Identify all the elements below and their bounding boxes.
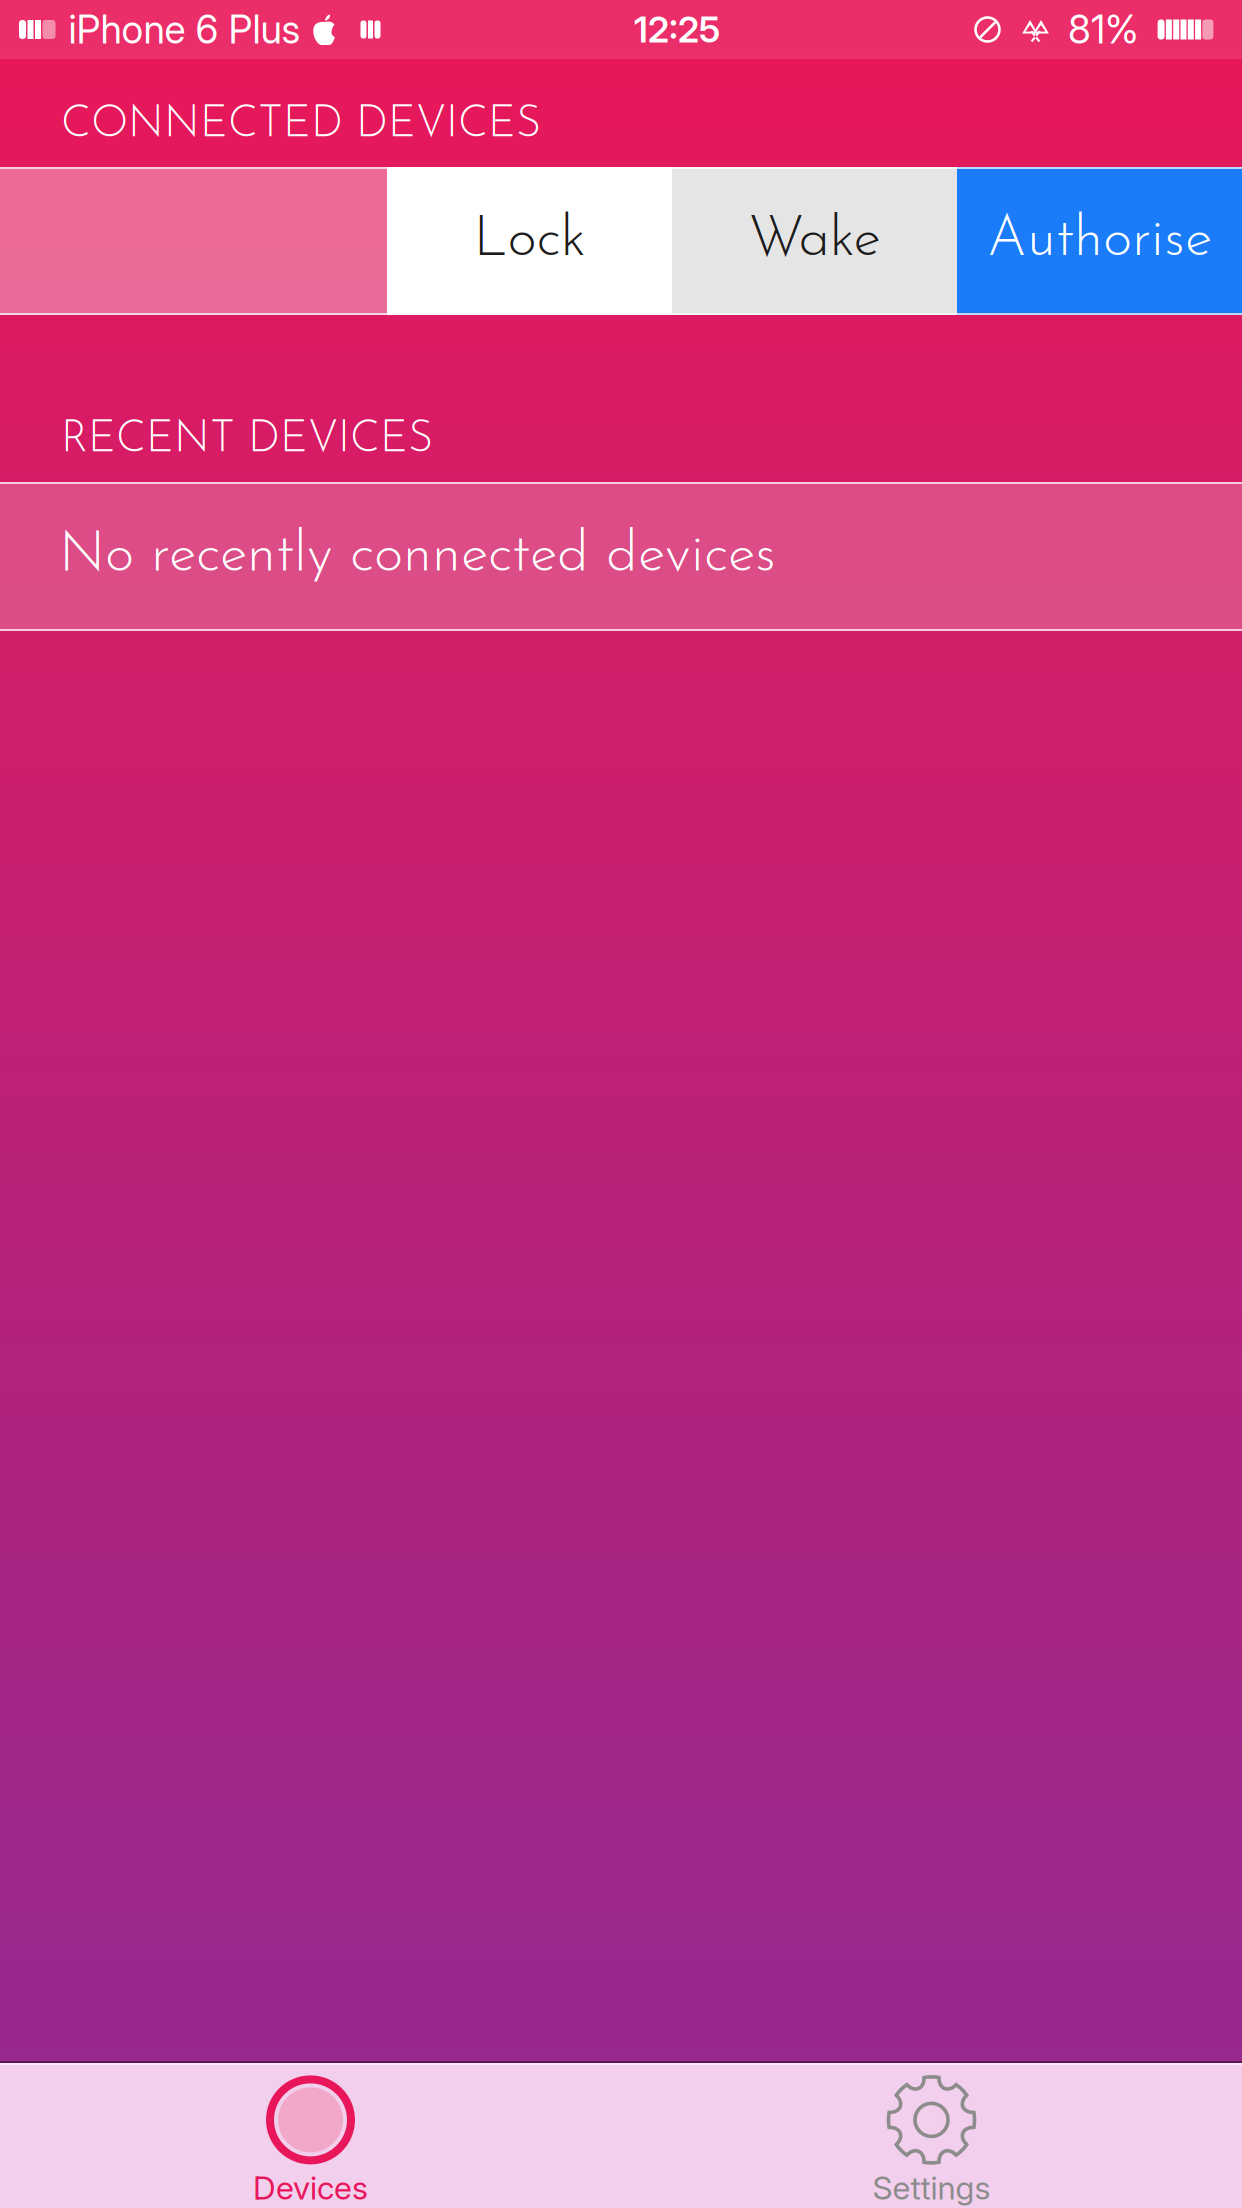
staticText: 12:25 xyxy=(634,8,721,51)
button[interactable]: No recently connected devices xyxy=(0,482,1242,631)
button[interactable]: Wake xyxy=(672,167,957,315)
staticText: Wake xyxy=(748,213,880,269)
staticText: No recently connected devices xyxy=(59,528,776,585)
staticText: iPhone 6 Plus xyxy=(68,6,300,53)
button[interactable]: Devices tab xyxy=(0,2065,621,2208)
staticText: Settings xyxy=(872,2168,990,2207)
staticText: 81% xyxy=(1068,6,1139,53)
staticText: Lock xyxy=(473,213,585,269)
button[interactable]: Settings tab xyxy=(621,2065,1242,2208)
button[interactable]: Lock xyxy=(387,167,672,315)
staticText: Devices xyxy=(253,2168,368,2207)
button[interactable] xyxy=(0,167,387,315)
button[interactable]: Authorise xyxy=(957,167,1242,315)
staticText: Authorise xyxy=(987,213,1212,269)
staticText: CONNECTED DEVICES xyxy=(61,104,541,147)
staticText: RECENT DEVICES xyxy=(61,419,433,462)
